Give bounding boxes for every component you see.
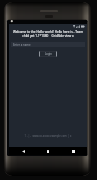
staticText: Welcome to the Hello world! Hello here i… — [10, 30, 86, 34]
button[interactable]: Home — [43, 147, 53, 155]
button[interactable]: Login — [39, 51, 57, 57]
button[interactable]: Back — [18, 147, 28, 155]
staticText: Enter a name — [13, 43, 31, 47]
staticText: Login — [45, 52, 52, 56]
other: Status icons — [73, 25, 85, 28]
staticText: child yet 1.1*1080 GridSide view x — [9, 34, 87, 38]
button[interactable]: Enter a name — [11, 42, 85, 47]
staticText: 1 - | - www.xx-xxxxx.example.com | x — [9, 134, 87, 138]
button[interactable]: Recents — [68, 147, 78, 155]
